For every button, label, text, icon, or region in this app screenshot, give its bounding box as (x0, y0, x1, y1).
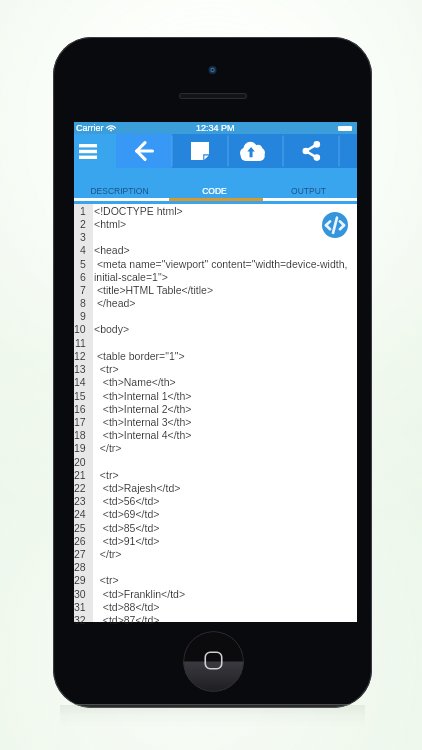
staticText: 3 (80, 231, 86, 243)
button[interactable]: CODE (167, 168, 261, 198)
staticText: 20 (74, 456, 86, 468)
staticText: <td>Franklin</td> (94, 588, 186, 600)
staticText: Carrier (76, 123, 104, 133)
staticText: 2 (80, 218, 86, 230)
staticText: <td>87</td> (94, 614, 160, 626)
button[interactable]: Upload (228, 134, 283, 168)
staticText: <td>88</td> (94, 601, 160, 613)
staticText: <th>Internal 2</th> (94, 403, 192, 415)
staticText: OUTPUT (291, 186, 326, 195)
staticText: <td>91</td> (94, 535, 160, 547)
staticText: 24 (74, 508, 86, 520)
staticText: 14 (74, 376, 86, 388)
staticText: 11 (75, 337, 86, 349)
staticText: <body> (94, 323, 130, 335)
staticText: 21 (74, 469, 86, 481)
staticText: 16 (74, 403, 86, 415)
staticText: <!DOCTYPE html> (94, 205, 183, 217)
staticText: 8 (80, 297, 86, 309)
staticText: <title>HTML Table</title> (94, 284, 214, 296)
staticText: 29 (74, 574, 86, 586)
staticText: <th>Internal 4</th> (94, 429, 192, 441)
button[interactable]: Toggle code view (322, 212, 348, 238)
staticText: 17 (74, 416, 86, 428)
staticText: <td>85</td> (94, 522, 160, 534)
button[interactable]: DESCRIPTION (72, 168, 167, 198)
staticText: <tr> (94, 574, 119, 586)
staticText: 19 (74, 442, 86, 454)
staticText: <td>69</td> (94, 508, 160, 520)
staticText: 4 (80, 244, 86, 256)
button[interactable]: Back (116, 134, 172, 168)
staticText: <td>Rajesh</td> (94, 482, 181, 494)
staticText: 18 (74, 429, 86, 441)
staticText: <th>Internal 1</th> (94, 390, 192, 402)
button[interactable]: More (339, 134, 357, 168)
staticText: 5 (80, 258, 86, 270)
staticText: <tr> (94, 363, 119, 375)
staticText: 27 (74, 548, 86, 560)
staticText: 12:34 PM (196, 123, 235, 133)
staticText: 23 (74, 495, 86, 507)
staticText: DESCRIPTION (90, 186, 149, 195)
staticText: CODE (202, 186, 227, 195)
staticText: 1 (80, 205, 86, 217)
staticText: <th>Internal 3</th> (94, 416, 192, 428)
staticText: 9 (80, 310, 86, 322)
staticText: 15 (74, 390, 86, 402)
staticText: 12 (74, 350, 86, 362)
staticText: 31 (74, 601, 86, 613)
staticText: 28 (74, 561, 86, 573)
button[interactable]: Share (283, 134, 339, 168)
button[interactable]: OUTPUT (261, 168, 355, 198)
staticText: <table border="1"> (94, 350, 185, 362)
staticText: 13 (74, 363, 86, 375)
staticText: </tr> (94, 442, 122, 454)
staticText: <th>Name</th> (94, 376, 176, 388)
staticText: <tr> (94, 469, 119, 481)
staticText: </head> (94, 297, 136, 309)
staticText: 6 (80, 271, 86, 283)
staticText: <html> (94, 218, 127, 230)
staticText: 10 (74, 323, 86, 335)
staticText: <head> (94, 244, 130, 256)
staticText: <td>56</td> (94, 495, 160, 507)
staticText: </tr> (94, 548, 122, 560)
staticText: 22 (74, 482, 86, 494)
staticText: <meta name="viewport" content="width=dev… (94, 258, 348, 270)
staticText: 7 (80, 284, 86, 296)
button[interactable]: Menu (74, 134, 116, 168)
staticText: 30 (74, 588, 86, 600)
staticText: initial-scale=1"> (94, 271, 168, 283)
staticText: 26 (74, 535, 86, 547)
staticText: 32 (74, 614, 86, 626)
button[interactable]: New note (172, 134, 228, 168)
staticText: 25 (74, 522, 86, 534)
